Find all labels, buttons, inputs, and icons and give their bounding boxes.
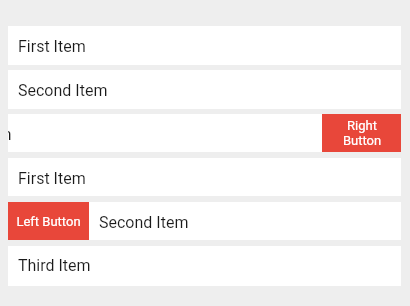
staticText: Second Item [99,213,189,232]
button[interactable]: Second Item [89,202,401,240]
button[interactable]: First Item [8,26,401,65]
button[interactable]: Third Item [8,246,401,286]
staticText: Left Button [16,214,81,229]
button[interactable]: Right Button [322,114,401,152]
button[interactable]: Second Item [8,70,401,109]
staticText: Third Item [8,125,12,144]
button[interactable]: Left Button [8,202,89,240]
staticText: First Item [18,37,86,56]
staticText: Second Item [18,81,108,100]
staticText: First Item [18,169,86,188]
button[interactable]: Third Item [8,114,322,152]
staticText: Third Item [18,256,91,275]
button[interactable]: First Item [8,158,401,196]
staticText: Right Button [338,118,386,148]
